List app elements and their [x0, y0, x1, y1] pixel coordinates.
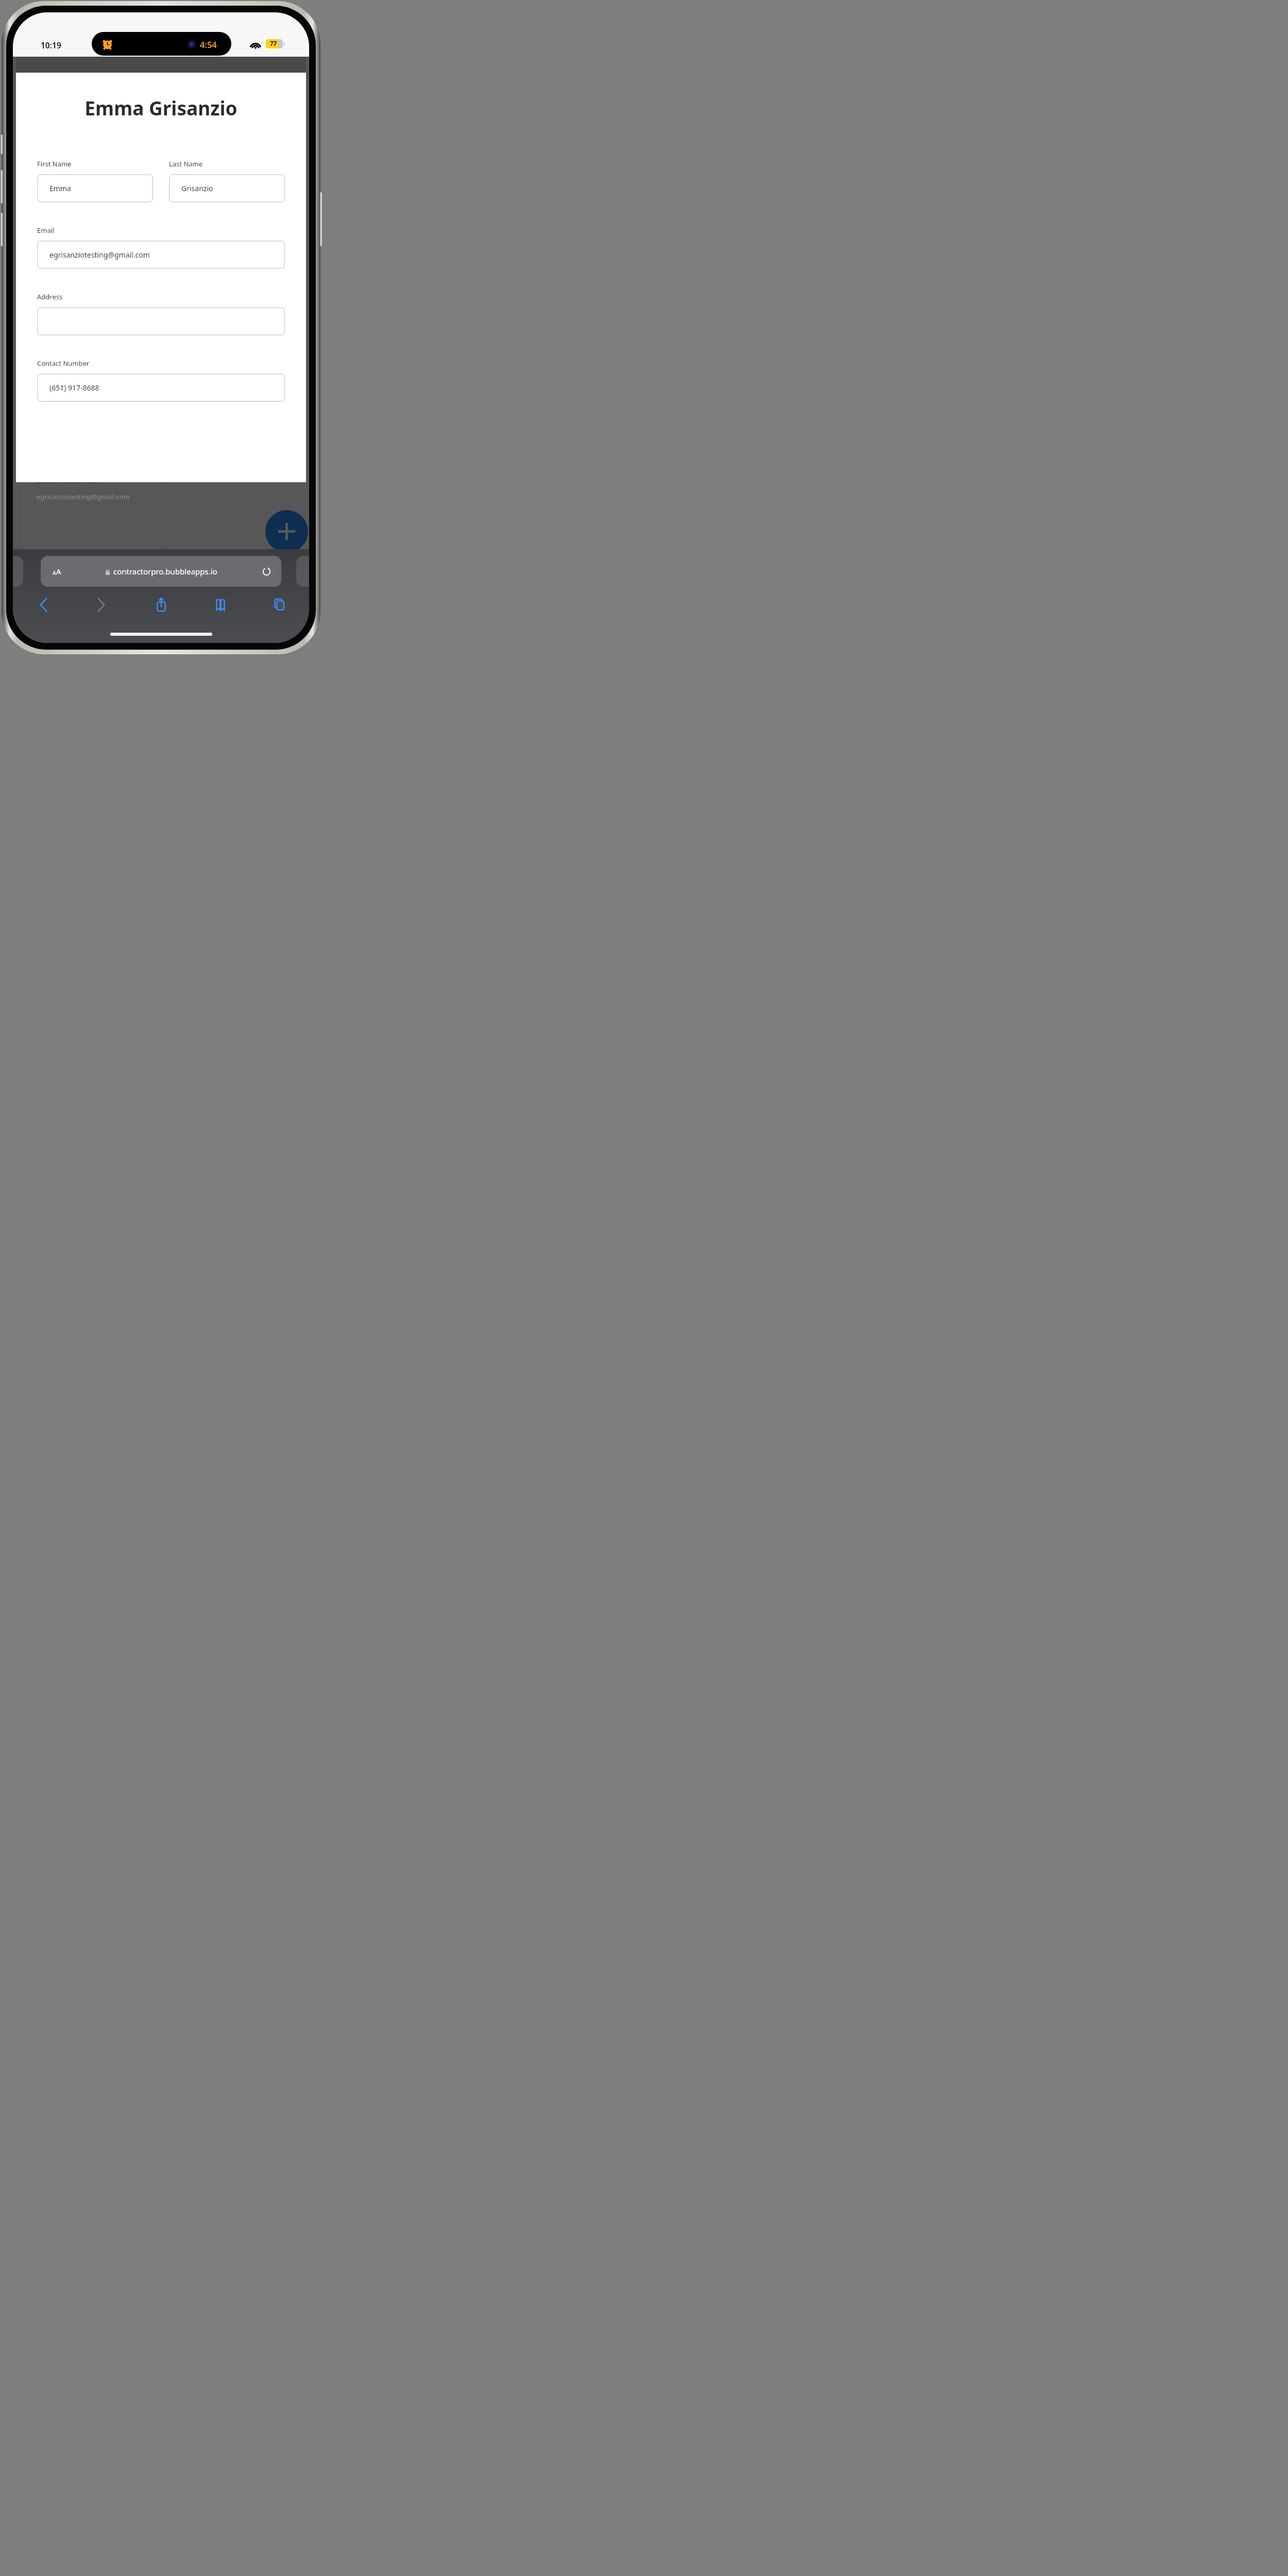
button[interactable]: Share: [131, 592, 191, 618]
staticText: 10:19: [41, 40, 61, 50]
staticText: A: [53, 569, 56, 577]
staticText: Grisanzio: [181, 183, 213, 193]
staticText: Last Name: [169, 159, 203, 168]
staticText: Email: [37, 226, 55, 235]
button[interactable]: egrisanziotesting@gmail.com: [37, 241, 285, 269]
button[interactable]: Back: [13, 592, 72, 618]
button[interactable]: (651) 917-8688: [37, 374, 285, 402]
button[interactable]: Forward: [72, 592, 131, 618]
staticText: contractorpro.bubbleapps.io: [113, 566, 217, 577]
staticText: Contact Number: [37, 359, 90, 368]
staticText: 77: [270, 40, 277, 48]
staticText: (651) 917-8688: [49, 383, 99, 393]
button[interactable]: [37, 307, 285, 335]
staticText: egrisanziotesting@gmail.com: [37, 492, 130, 501]
button[interactable]: Add: [265, 510, 308, 553]
other: Reload: [262, 567, 271, 576]
button[interactable]: Emma: [37, 174, 153, 202]
button[interactable]: Tabs: [250, 592, 309, 618]
staticText: Emma Grisanzio: [37, 474, 101, 485]
staticText: Emma: [49, 183, 71, 193]
staticText: egrisanziotesting@gmail.com: [49, 250, 150, 260]
staticText: Address: [37, 292, 63, 301]
button[interactable]: Grisanzio: [169, 174, 285, 202]
staticText: A: [56, 566, 61, 577]
button[interactable]: A: [41, 556, 281, 587]
staticText: First Name: [37, 159, 72, 168]
staticText: 4:54: [200, 39, 217, 50]
button[interactable]: Bookmarks: [191, 592, 250, 618]
staticText: Emma Grisanzio: [16, 95, 306, 121]
